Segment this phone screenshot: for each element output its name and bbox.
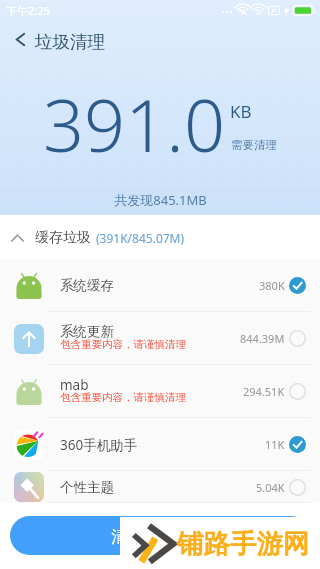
staticText: 391.0 [43,75,226,173]
staticText: 个性主题 [60,479,114,496]
staticText: 下午2:25 [6,3,50,18]
button[interactable]: mab [0,365,320,418]
staticText: mab [60,376,89,394]
staticText: 294.51K [243,384,285,399]
button[interactable]: 360手机助手 [0,418,320,471]
staticText: 共发现845.1MB [114,191,207,209]
staticText: 需要清理 [231,138,277,152]
staticText: 铺路手游网 [177,527,310,560]
staticText: KB [230,100,252,123]
button[interactable]: Back [5,24,36,55]
staticText: 380K [259,278,285,293]
staticText: 包含重要内容，请谨慎清理 [60,391,186,404]
button[interactable]: 清理 391.0KB [10,516,310,555]
staticText: 360手机助手 [60,436,138,454]
staticText: 垃圾清理 [35,31,105,53]
staticText: 844.39M [240,331,285,346]
staticText: 系统缓存 [60,277,114,294]
staticText: 系统更新 [60,323,114,340]
button[interactable]: 个性主题 [0,471,320,503]
staticText: 缓存垃圾 [35,229,91,247]
staticText: (391K/845.07M) [96,230,185,246]
staticText: 清理 391.0KB [111,525,209,547]
staticText: 11K [265,437,285,452]
staticText: 5.04K [256,480,285,495]
button[interactable]: 缓存垃圾 [0,216,320,259]
staticText: 包含重要内容，请谨慎清理 [60,338,186,351]
button[interactable]: 系统缓存 [0,259,320,312]
button[interactable]: 系统更新 [0,312,320,365]
